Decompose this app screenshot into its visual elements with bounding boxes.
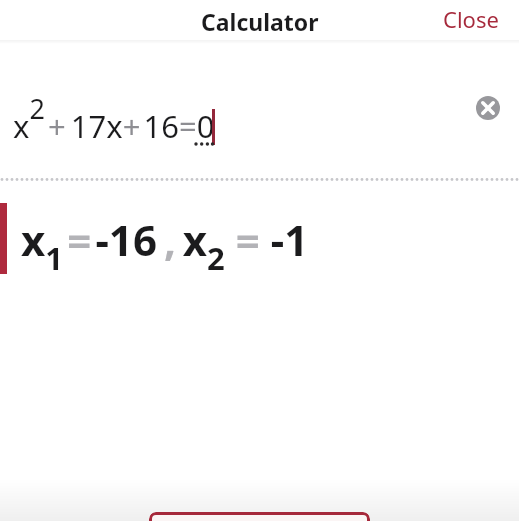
staticText: Calculator xyxy=(201,6,319,37)
staticText: Close xyxy=(443,4,499,34)
button[interactable] xyxy=(476,96,500,120)
button[interactable] xyxy=(149,512,370,521)
staticText: x1 = -16 , x2 = -1 xyxy=(21,211,309,279)
button[interactable]: Close xyxy=(435,0,507,42)
staticText: x2 + 17x+ 16=0 xyxy=(13,90,215,148)
